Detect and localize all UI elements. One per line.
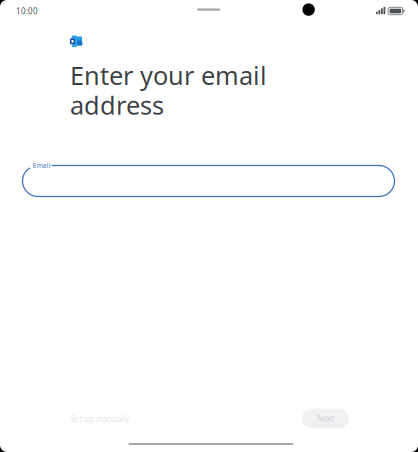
staticText: Set up manually bbox=[70, 414, 129, 424]
button[interactable]: Email bbox=[22, 165, 394, 196]
staticText: address bbox=[70, 88, 164, 122]
button[interactable]: Next bbox=[302, 409, 349, 428]
button[interactable]: Set up manually bbox=[70, 414, 129, 424]
staticText: 10:00 bbox=[16, 6, 38, 16]
staticText: Email bbox=[33, 161, 51, 170]
staticText: Enter your email bbox=[70, 58, 267, 92]
staticText: Next bbox=[317, 413, 334, 424]
